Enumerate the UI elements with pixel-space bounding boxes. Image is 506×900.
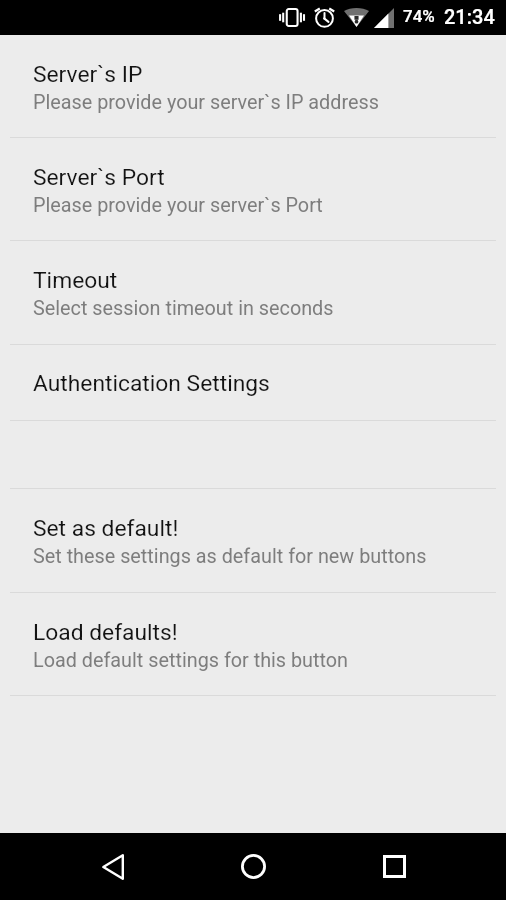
staticText: Server`s Port bbox=[33, 164, 165, 191]
staticText: Set these settings as default for new bu… bbox=[33, 545, 427, 568]
button[interactable]: Recent apps bbox=[351, 833, 437, 900]
staticText: 74% bbox=[403, 6, 435, 26]
staticText: 21:34 bbox=[444, 5, 495, 28]
button[interactable]: Server`s IP bbox=[0, 35, 506, 137]
staticText: Select session timeout in seconds bbox=[33, 297, 334, 320]
button[interactable]: Timeout bbox=[0, 241, 506, 344]
button[interactable]: Load defaults! bbox=[0, 593, 506, 695]
staticText: Please provide your server`s Port bbox=[33, 194, 323, 217]
staticText: Server`s IP bbox=[33, 61, 143, 88]
button[interactable]: Back bbox=[70, 833, 156, 900]
button[interactable]: Authentication Settings bbox=[0, 345, 506, 420]
staticText: Authentication Settings bbox=[33, 370, 270, 397]
button[interactable]: Server`s Port bbox=[0, 138, 506, 240]
staticText: Load defaults! bbox=[33, 619, 178, 646]
staticText: Timeout bbox=[33, 267, 118, 294]
staticText: Set as default! bbox=[33, 515, 179, 542]
staticText: Load default settings for this button bbox=[33, 649, 349, 672]
staticText: Please provide your server`s IP address bbox=[33, 91, 379, 114]
button[interactable]: Home bbox=[210, 833, 296, 900]
button[interactable]: Set as default! bbox=[0, 489, 506, 592]
